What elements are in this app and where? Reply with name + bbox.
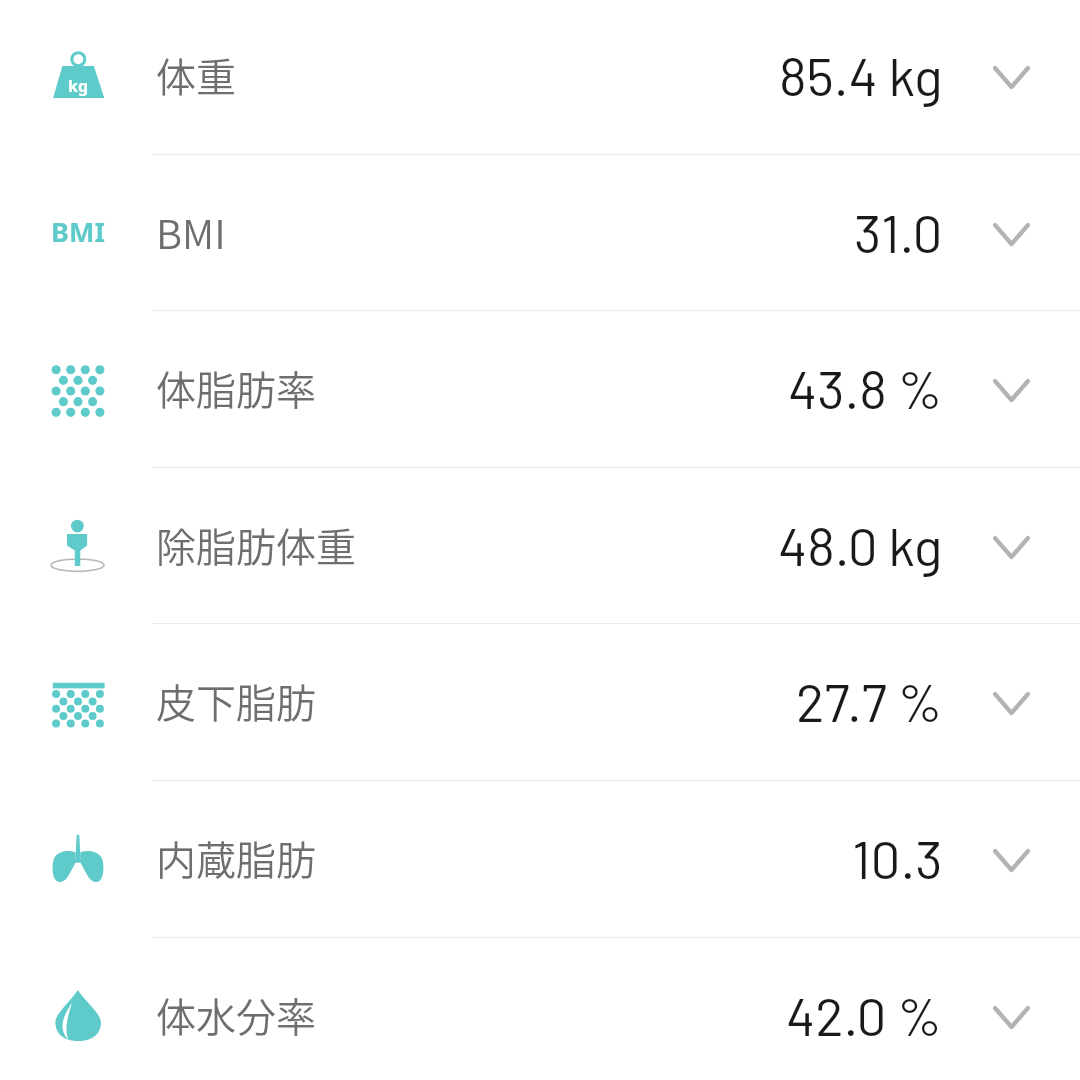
staticText: 42.0 % <box>786 983 943 1047</box>
staticText: 体水分率 <box>156 986 316 1044</box>
button[interactable]: 内蔵脂肪 <box>0 781 1080 937</box>
button[interactable]: kg <box>0 0 1080 154</box>
staticText: 10.3 <box>852 826 943 890</box>
other: Expand BMI <box>943 155 1080 311</box>
staticText: 27.7 % <box>796 669 943 733</box>
staticText: 85.4 kg <box>779 43 943 107</box>
button[interactable]: 体脂肪率 <box>0 311 1080 467</box>
other: Expand 除脂肪体重 <box>943 468 1080 624</box>
button[interactable]: BMI <box>0 155 1080 311</box>
staticText: BMI <box>51 213 105 250</box>
staticText: kg <box>68 75 89 97</box>
other: Expand 体重 <box>943 0 1080 154</box>
button[interactable]: 皮下脂肪 <box>0 624 1080 780</box>
other: Expand 体脂肪率 <box>943 311 1080 467</box>
button[interactable]: 除脂肪体重 <box>0 468 1080 624</box>
other: Expand 体水分率 <box>943 938 1080 1080</box>
staticText: 内蔵脂肪 <box>156 829 316 887</box>
other: Expand 内蔵脂肪 <box>943 781 1080 937</box>
staticText: 31.0 <box>854 200 943 264</box>
staticText: 43.8 % <box>788 356 943 420</box>
staticText: 皮下脂肪 <box>156 672 316 730</box>
button[interactable]: 体水分率 <box>0 938 1080 1080</box>
staticText: BMI <box>156 203 226 261</box>
staticText: 体脂肪率 <box>156 359 316 417</box>
staticText: 除脂肪体重 <box>156 516 356 574</box>
staticText: 体重 <box>156 46 236 104</box>
other: Expand 皮下脂肪 <box>943 624 1080 780</box>
staticText: 48.0 kg <box>778 513 943 577</box>
